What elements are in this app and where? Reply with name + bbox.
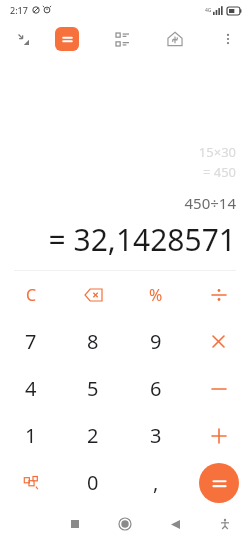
button[interactable]: 4: [0, 365, 62, 412]
staticText: 4: [25, 375, 37, 402]
button[interactable]: 5: [62, 365, 124, 412]
button[interactable]: Home: [110, 509, 140, 539]
staticText: 0: [87, 469, 99, 496]
button[interactable]: 1: [0, 412, 62, 459]
button[interactable]: 0: [62, 459, 124, 506]
staticText: 5: [87, 375, 99, 402]
button[interactable]: Mortgage: [160, 24, 190, 54]
staticText: %: [149, 284, 163, 306]
button[interactable]: Plus: [187, 412, 250, 459]
staticText: = 450: [202, 163, 236, 181]
button[interactable]: Converters: [108, 25, 136, 53]
button[interactable]: 9: [124, 318, 187, 365]
other: Plus: [212, 429, 226, 443]
button[interactable]: Equals: [199, 463, 239, 503]
button[interactable]: 3: [124, 412, 187, 459]
staticText: 9: [150, 328, 162, 355]
button[interactable]: Collapse: [8, 24, 38, 54]
button[interactable]: 2: [62, 412, 124, 459]
button[interactable]: 8: [62, 318, 124, 365]
button[interactable]: Back: [160, 509, 190, 539]
button[interactable]: Backspace: [62, 271, 124, 318]
staticText: 4G: [205, 7, 212, 14]
staticText: 450÷14: [184, 193, 236, 213]
other: Backspace: [85, 289, 102, 301]
other: Multiply: [213, 336, 224, 347]
staticText: 1: [25, 422, 37, 449]
staticText: 3: [150, 422, 162, 449]
button[interactable]: %: [124, 271, 187, 318]
other: Convert: [24, 475, 39, 490]
button[interactable]: ,: [124, 459, 187, 506]
button[interactable]: 7: [0, 318, 62, 365]
button[interactable]: Minus: [187, 365, 250, 412]
button[interactable]: Calculator: [55, 27, 79, 51]
button[interactable]: More options: [214, 25, 242, 53]
staticText: 7: [25, 328, 37, 355]
staticText: ,: [153, 469, 159, 496]
staticText: 6: [150, 375, 162, 402]
staticText: C: [26, 284, 37, 306]
button[interactable]: Accessibility: [210, 509, 240, 539]
other: Minus: [212, 384, 226, 394]
button[interactable]: Convert: [0, 459, 62, 506]
button[interactable]: Divide: [187, 271, 250, 318]
staticText: 2: [87, 422, 99, 449]
staticText: 15×30: [198, 143, 236, 161]
button[interactable]: Multiply: [187, 318, 250, 365]
other: Divide: [212, 288, 226, 302]
button[interactable]: C: [0, 271, 62, 318]
button[interactable]: 6: [124, 365, 187, 412]
button[interactable]: Recents: [60, 509, 90, 539]
staticText: = 32,1428571: [48, 219, 236, 260]
staticText: 8: [87, 328, 99, 355]
staticText: 2:17: [10, 4, 28, 16]
